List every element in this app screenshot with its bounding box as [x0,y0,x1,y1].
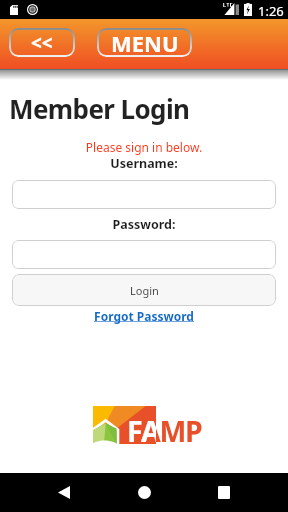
button[interactable] [12,240,276,269]
staticText: FAMP [127,412,202,444]
staticText: Password: [0,216,288,233]
staticText: 1:26 [258,2,284,20]
button[interactable]: Back [44,473,84,512]
button[interactable]: Recent apps [204,473,244,512]
button[interactable]: MENU [97,28,192,57]
button[interactable] [12,180,276,209]
staticText: Member Login [9,91,190,126]
staticText: Username: [0,155,288,172]
staticText: MENU [111,28,179,57]
button[interactable]: Home [124,473,164,512]
button[interactable]: Login [12,274,276,306]
button[interactable]: << [9,28,75,57]
staticText: FAMP [127,412,202,444]
staticText: Login [130,283,159,298]
staticText: Please sign in below. [0,139,288,155]
staticText: << [31,30,53,56]
button[interactable]: Forgot Password [0,308,288,324]
